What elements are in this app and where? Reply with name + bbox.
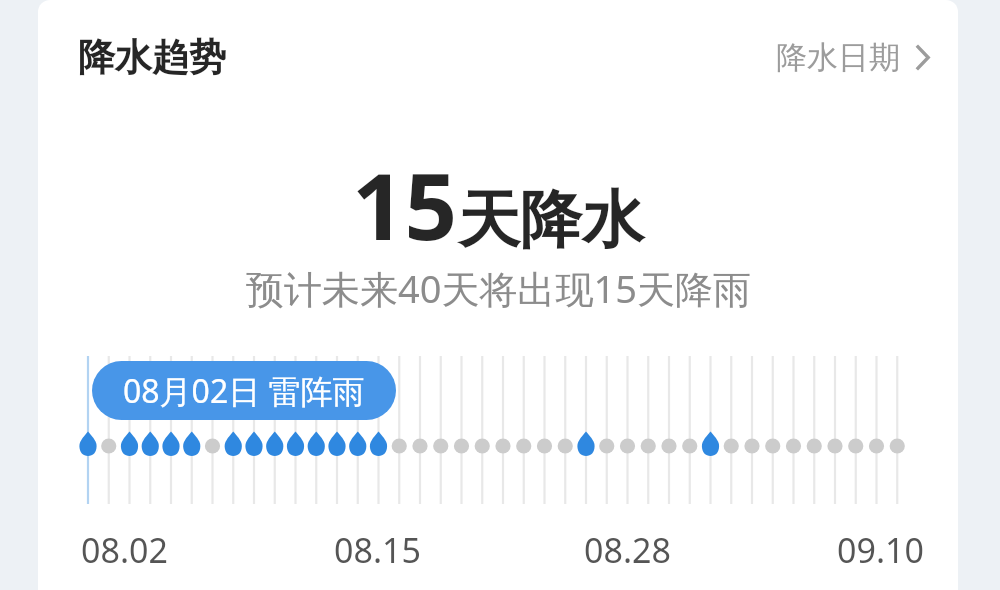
staticText: 降水趋势 (78, 34, 226, 81)
staticText: 09.10 (837, 527, 924, 573)
staticText: 15 (352, 142, 458, 267)
other: 查看降水日期 (915, 44, 930, 71)
staticText: 08.15 (334, 527, 421, 573)
staticText: 08.28 (584, 527, 671, 573)
button[interactable]: 08月02日 雷阵雨 (92, 361, 396, 420)
staticText: 08.02 (81, 527, 168, 573)
staticText: 天降水 (458, 181, 644, 259)
button[interactable]: 降水日期 (770, 30, 936, 85)
staticText: 08月02日 雷阵雨 (123, 369, 365, 413)
staticText: 预计未来40天将出现15天降雨 (246, 262, 751, 314)
staticText: 降水日期 (776, 38, 900, 77)
